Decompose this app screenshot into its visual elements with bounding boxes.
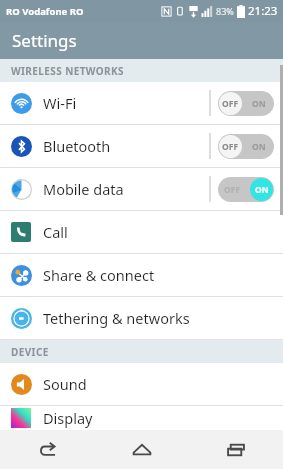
button[interactable]: Sound: [0, 363, 283, 405]
staticText: 21:23: [248, 3, 278, 19]
staticText: Wi-Fi: [43, 93, 209, 113]
button[interactable]: Mobile data: [0, 168, 283, 210]
button[interactable]: Call: [0, 211, 283, 253]
button[interactable]: Bluetooth: [0, 125, 283, 167]
button[interactable]: Toggle off: [218, 134, 274, 159]
staticText: Tethering & networks: [43, 308, 283, 328]
staticText: OFF: [224, 98, 241, 110]
staticText: Share & connect: [43, 265, 283, 285]
staticText: ON: [252, 141, 266, 153]
staticText: ON: [252, 184, 266, 196]
button[interactable]: Wi-Fi: [0, 82, 283, 124]
staticText: Bluetooth: [43, 136, 209, 156]
button[interactable]: Toggle on: [218, 177, 274, 202]
staticText: ON: [255, 184, 269, 196]
staticText: WIRELESS NETWORKS: [11, 64, 125, 78]
button[interactable]: Tethering & networks: [0, 297, 283, 339]
staticText: Call: [43, 222, 283, 242]
button[interactable]: Toggle off: [218, 91, 274, 116]
button[interactable]: Back: [0, 430, 95, 469]
staticText: RO Vodafone RO: [6, 5, 84, 18]
staticText: Display: [43, 408, 283, 428]
staticText: OFF: [224, 141, 241, 153]
button[interactable]: Recents: [189, 430, 283, 469]
staticText: Settings: [12, 29, 77, 52]
staticText: OFF: [224, 184, 241, 196]
staticText: OFF: [222, 141, 239, 153]
staticText: 83%: [216, 5, 234, 17]
staticText: Mobile data: [43, 179, 209, 199]
staticText: Sound: [43, 374, 283, 394]
staticText: OFF: [222, 98, 239, 110]
button[interactable]: Settings: [0, 22, 283, 59]
button[interactable]: Home: [95, 430, 189, 469]
staticText: ON: [252, 98, 266, 110]
staticText: DEVICE: [11, 345, 49, 359]
button[interactable]: Share & connect: [0, 254, 283, 296]
button[interactable]: Display: [0, 406, 283, 430]
